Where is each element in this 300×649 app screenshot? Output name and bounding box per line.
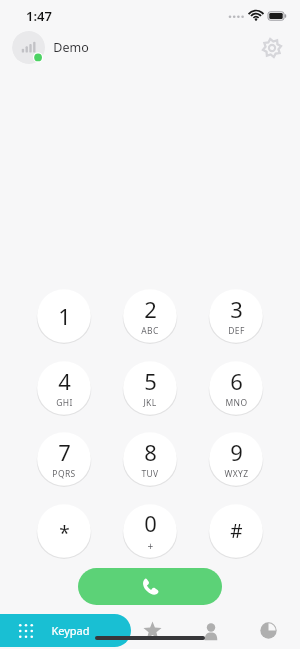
staticText: + <box>147 539 154 553</box>
button[interactable]: 3 <box>208 288 264 344</box>
staticText: 1 <box>58 301 71 331</box>
staticText: MNO <box>225 397 248 409</box>
staticText: # <box>230 518 243 544</box>
staticText: 7 <box>58 437 71 467</box>
button[interactable]: 6 <box>208 360 264 416</box>
staticText: WXYZ <box>224 468 249 480</box>
staticText: 2 <box>144 294 157 324</box>
staticText: * <box>59 520 70 546</box>
staticText: 9 <box>230 437 243 467</box>
button[interactable]: 1 <box>36 288 92 344</box>
staticText: GHI <box>56 397 73 409</box>
staticText: 6 <box>230 366 243 396</box>
button[interactable]: Keypad <box>0 614 131 647</box>
staticText: ABC <box>141 325 159 337</box>
button[interactable]: 9 <box>208 431 264 487</box>
staticText: 0 <box>144 508 157 538</box>
button[interactable]: Favorites <box>136 614 169 647</box>
staticText: 1:47 <box>26 7 52 25</box>
button[interactable]: Demo <box>12 31 97 64</box>
staticText: 5 <box>144 366 157 396</box>
staticText: TUV <box>141 468 159 480</box>
button[interactable]: * <box>36 503 92 559</box>
button[interactable]: # <box>208 503 264 559</box>
staticText: PQRS <box>52 468 76 480</box>
staticText: 4 <box>58 366 71 396</box>
button[interactable]: Recents <box>252 614 285 647</box>
staticText: 3 <box>230 294 243 324</box>
staticText: JKL <box>143 397 157 409</box>
button[interactable]: 2 <box>122 288 178 344</box>
button[interactable]: Settings <box>258 34 286 62</box>
staticText: 8 <box>144 437 157 467</box>
button[interactable]: 7 <box>36 431 92 487</box>
button[interactable]: 8 <box>122 431 178 487</box>
staticText: DEF <box>228 325 245 337</box>
staticText: Demo <box>53 39 89 56</box>
button[interactable]: 0 <box>122 503 178 559</box>
button[interactable]: 4 <box>36 360 92 416</box>
button[interactable]: Contacts <box>194 614 227 647</box>
staticText: Keypad <box>51 623 90 638</box>
button[interactable]: 5 <box>122 360 178 416</box>
button[interactable]: Call <box>78 568 222 605</box>
